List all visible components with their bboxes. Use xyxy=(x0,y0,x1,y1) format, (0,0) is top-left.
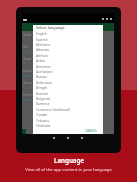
button[interactable]: Bulgarian xyxy=(33,96,103,101)
staticText: Download xyxy=(23,57,33,61)
button[interactable]: Afrikaans xyxy=(33,42,103,47)
button[interactable]: Armenian xyxy=(33,64,103,69)
staticText: Afrikaans xyxy=(36,43,51,47)
staticText: Cebuano xyxy=(36,119,50,123)
staticText: Storage xyxy=(23,81,33,85)
staticText: English xyxy=(36,32,47,36)
staticText: Default xyxy=(23,50,33,54)
staticText: Arabic xyxy=(36,59,46,63)
button[interactable]: Bosnian xyxy=(33,91,103,96)
button[interactable]: CANCEL xyxy=(84,128,99,134)
button[interactable]: Cantonese (traditional) xyxy=(33,107,103,112)
staticText: Bengali xyxy=(36,86,48,90)
staticText: Autoplay xyxy=(23,69,33,73)
button[interactable]: Bengali xyxy=(33,85,103,90)
button[interactable]: Azerbaijani xyxy=(33,69,103,74)
staticText: View all of the app content in your lang… xyxy=(25,167,112,173)
staticText: Text size xyxy=(23,45,33,49)
button[interactable]: Catalan xyxy=(33,112,103,117)
button[interactable]: Belarusian xyxy=(33,80,103,85)
staticText: Burmese xyxy=(36,102,50,106)
button[interactable]: Amharic xyxy=(33,53,103,58)
staticText: Wi-Fi only xyxy=(23,62,33,66)
staticText: Select language xyxy=(36,25,65,30)
staticText: Privacy xyxy=(23,93,33,97)
staticText: Spanish xyxy=(36,38,48,42)
staticText: Chichewa xyxy=(36,124,51,128)
staticText: Bosnian xyxy=(36,92,49,96)
staticText: CANCEL xyxy=(85,129,98,133)
staticText: Armenian xyxy=(36,65,51,69)
staticText: Customise alerts xyxy=(23,38,33,42)
button[interactable]: Basque xyxy=(33,74,103,79)
button[interactable]: English xyxy=(33,31,103,36)
button[interactable]: Arabic xyxy=(33,58,103,63)
staticText: Always on xyxy=(23,74,33,78)
staticText: 142 MB used xyxy=(23,86,33,90)
staticText: Basque xyxy=(36,75,48,79)
button[interactable]: Chichewa xyxy=(33,123,103,128)
button[interactable]: Albanian xyxy=(33,47,103,52)
staticText: Notifications xyxy=(23,33,33,37)
button[interactable]: Cebuano xyxy=(33,118,103,123)
staticText: Azerbaijani xyxy=(36,70,53,74)
staticText: Albanian xyxy=(36,48,50,52)
staticText: Amharic xyxy=(36,54,49,58)
staticText: Manage data xyxy=(23,98,33,102)
staticText: Cantonese (traditional) xyxy=(36,108,71,112)
staticText: Language xyxy=(54,156,84,164)
staticText: Belarusian xyxy=(36,81,52,85)
staticText: Catalan xyxy=(36,113,48,117)
button[interactable]: Burmese xyxy=(33,101,103,106)
staticText: Bulgarian xyxy=(36,97,51,101)
button[interactable]: Spanish xyxy=(33,37,103,42)
